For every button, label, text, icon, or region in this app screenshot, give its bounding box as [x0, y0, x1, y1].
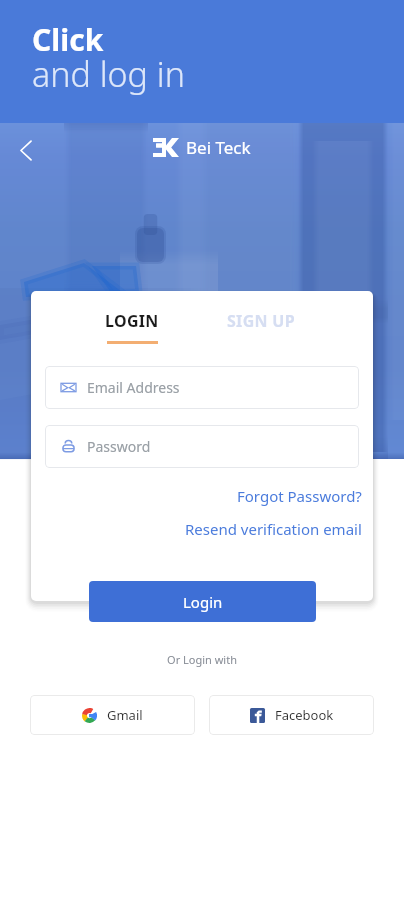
button[interactable]: Login — [89, 581, 316, 622]
button[interactable]: Back — [2, 126, 50, 174]
staticText: Or Login with — [0, 652, 404, 667]
staticText: Bei Teck — [186, 136, 251, 159]
staticText: LOGIN — [105, 310, 159, 332]
staticText: Email Address — [87, 378, 180, 397]
staticText: Resend verification email — [185, 519, 362, 539]
staticText: Click — [32, 19, 104, 60]
staticText: SIGN UP — [227, 310, 295, 332]
button[interactable]: Resend verification email — [185, 519, 362, 539]
button[interactable]: SIGN UP — [227, 310, 295, 332]
staticText: and log in — [32, 51, 185, 97]
button[interactable]: Facebook — [209, 695, 374, 735]
button[interactable]: Password — [45, 425, 359, 468]
button[interactable]: LOGIN — [105, 310, 159, 344]
staticText: Facebook — [275, 706, 334, 724]
staticText: Login — [183, 592, 223, 612]
button[interactable]: Gmail — [30, 695, 195, 735]
button[interactable]: Email Address — [45, 366, 359, 409]
staticText: Password — [87, 437, 151, 456]
button[interactable]: Forgot Password? — [237, 486, 362, 506]
staticText: Gmail — [107, 706, 143, 724]
staticText: Forgot Password? — [237, 486, 362, 506]
